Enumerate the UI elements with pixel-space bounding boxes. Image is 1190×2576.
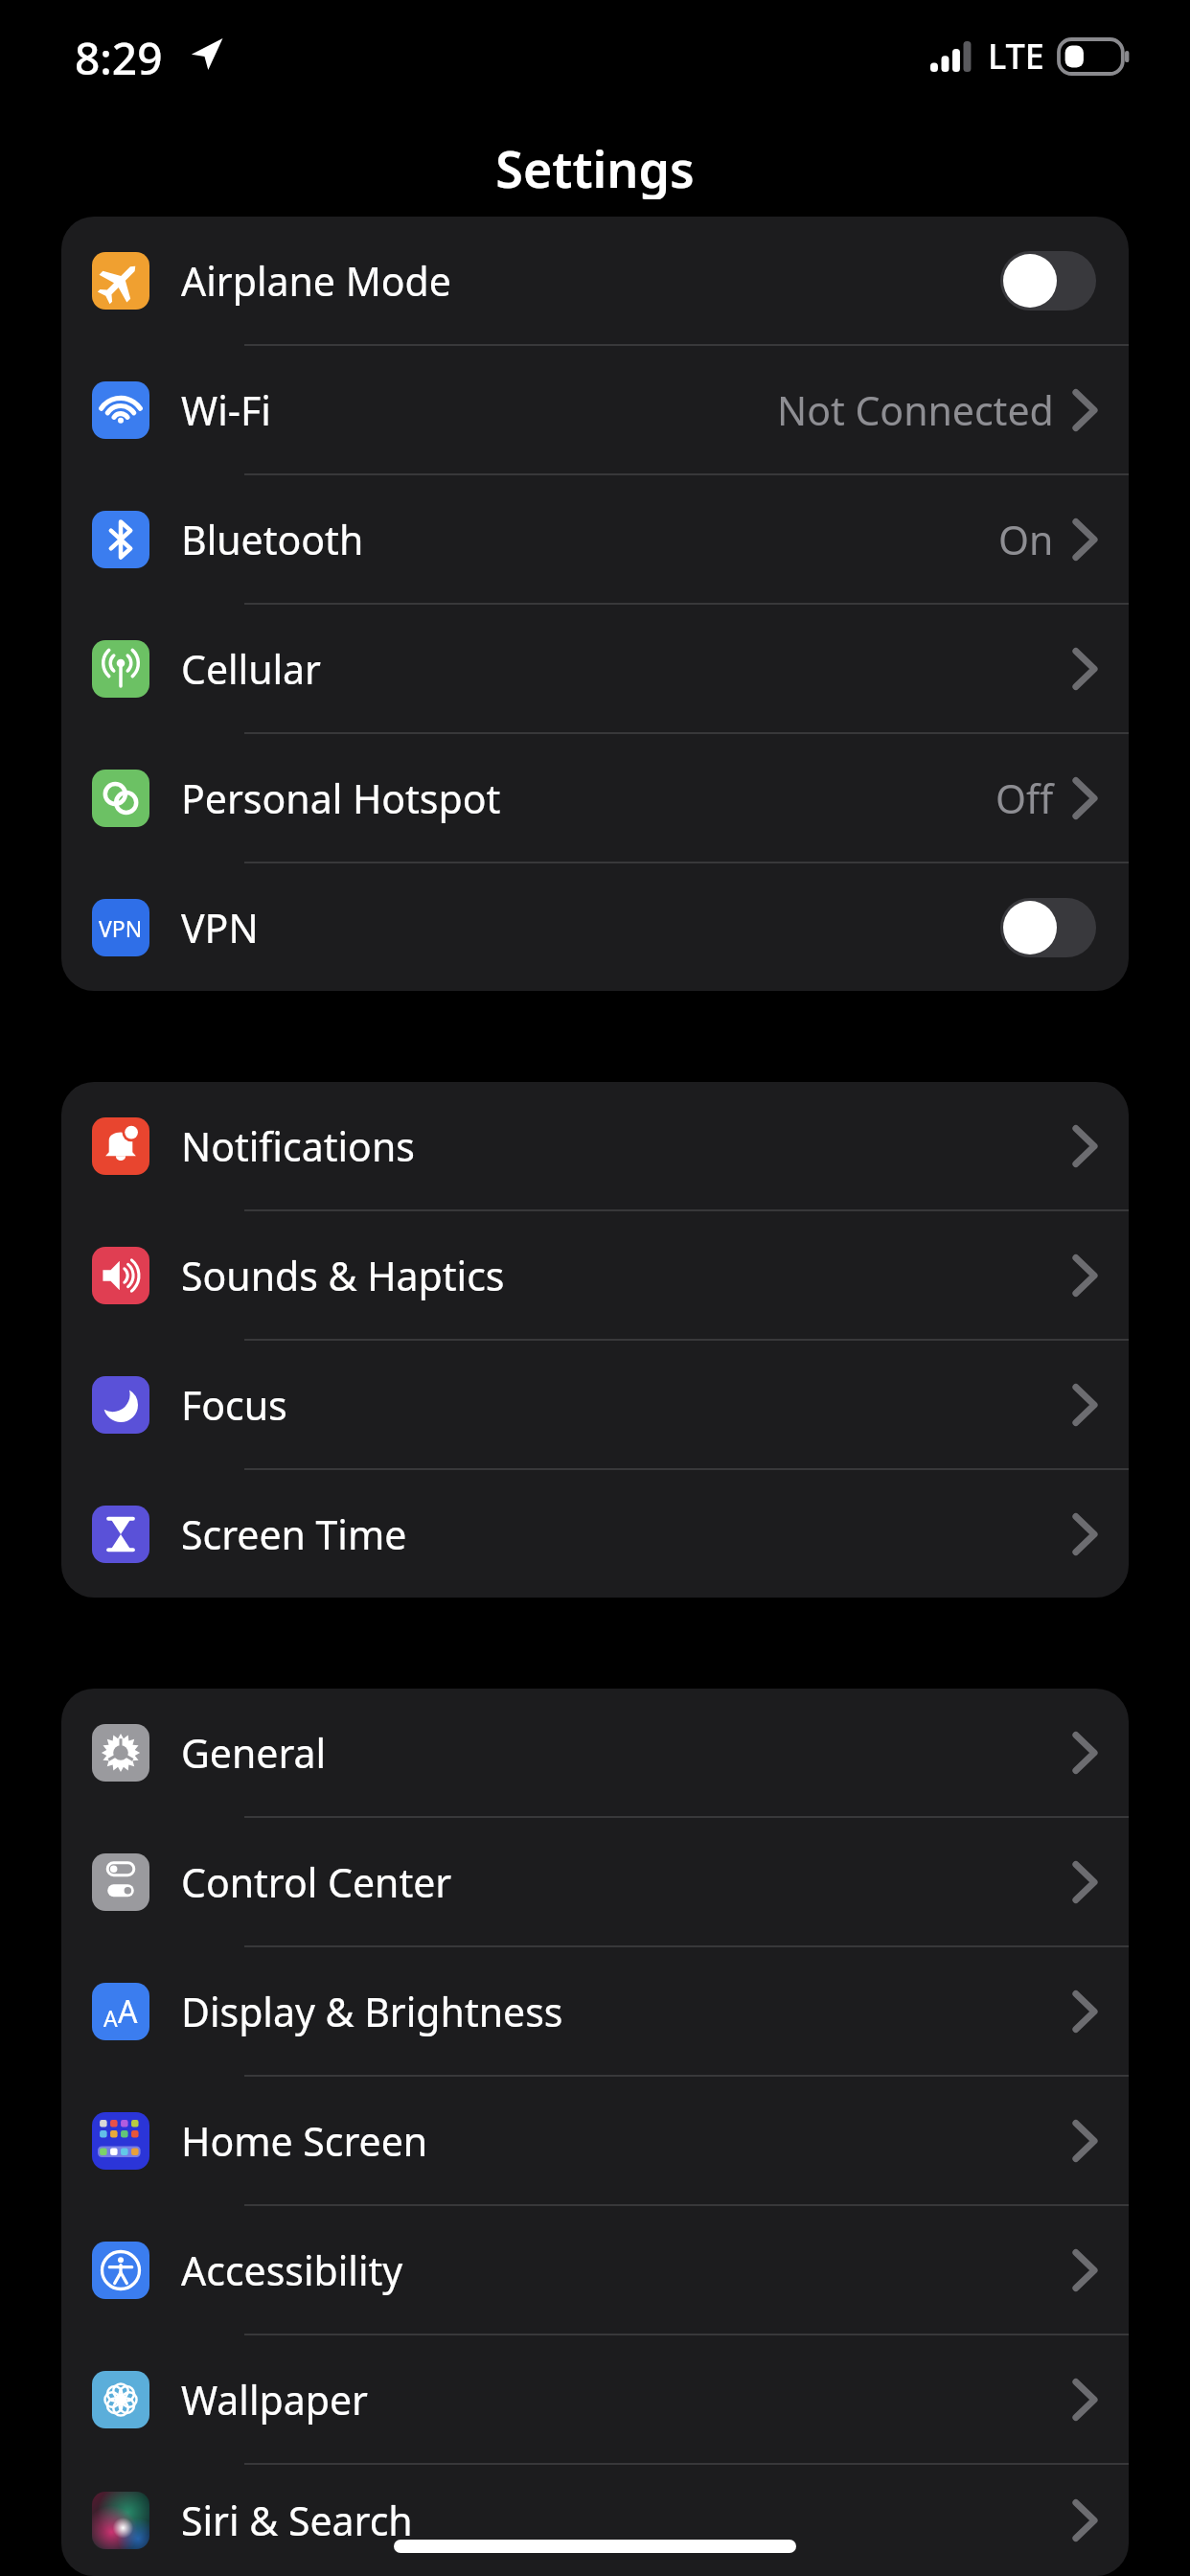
staticText: Airplane Mode — [181, 254, 1000, 308]
staticText: LTE — [988, 33, 1044, 80]
button[interactable]: Toggle — [1000, 898, 1096, 957]
button[interactable]: Airplane Mode — [61, 217, 1129, 344]
button[interactable]: Screen Time — [61, 1470, 1129, 1598]
staticText: VPN — [99, 913, 143, 943]
staticText: Display & Brightness — [181, 1985, 1073, 2038]
button[interactable]: Bluetooth — [61, 475, 1129, 603]
button[interactable]: VPN — [61, 863, 1129, 991]
button[interactable]: Notifications — [61, 1082, 1129, 1209]
button[interactable]: General — [61, 1689, 1129, 1816]
staticText: Off — [995, 771, 1054, 825]
staticText: Not Connected — [777, 383, 1054, 437]
staticText: A — [118, 1990, 138, 2033]
staticText: Wi-Fi — [181, 383, 777, 437]
staticText: General — [181, 1726, 1073, 1780]
staticText: Cellular — [181, 642, 1073, 696]
button[interactable]: Control Center — [61, 1818, 1129, 1945]
staticText: Notifications — [181, 1119, 1073, 1173]
button[interactable]: Cellular — [61, 605, 1129, 732]
button[interactable]: Home Screen — [61, 2077, 1129, 2204]
staticText: Sounds & Haptics — [181, 1249, 1073, 1302]
staticText: Home Screen — [181, 2114, 1073, 2168]
staticText: Bluetooth — [181, 513, 998, 566]
staticText: Wallpaper — [181, 2373, 1073, 2426]
button[interactable]: Focus — [61, 1341, 1129, 1468]
staticText: Personal Hotspot — [181, 771, 995, 825]
staticText: Settings — [495, 134, 695, 199]
staticText: A — [103, 2003, 118, 2033]
staticText: VPN — [181, 901, 1000, 954]
button[interactable]: Toggle — [1000, 251, 1096, 310]
button[interactable]: Sounds & Haptics — [61, 1211, 1129, 1339]
staticText: Screen Time — [181, 1507, 1073, 1561]
button[interactable]: Accessibility — [61, 2206, 1129, 2334]
button[interactable]: Siri & Search — [61, 2465, 1129, 2576]
button[interactable]: Wallpaper — [61, 2335, 1129, 2463]
staticText: Siri & Search — [181, 2494, 1073, 2547]
button[interactable]: A — [61, 1947, 1129, 2075]
staticText: 8:29 — [75, 28, 163, 88]
staticText: Control Center — [181, 1855, 1073, 1909]
other: Location — [188, 35, 224, 72]
staticText: Accessibility — [181, 2243, 1073, 2297]
button[interactable]: Personal Hotspot — [61, 734, 1129, 862]
staticText: On — [998, 513, 1054, 566]
staticText: Focus — [181, 1378, 1073, 1432]
button[interactable]: Wi-Fi — [61, 346, 1129, 473]
